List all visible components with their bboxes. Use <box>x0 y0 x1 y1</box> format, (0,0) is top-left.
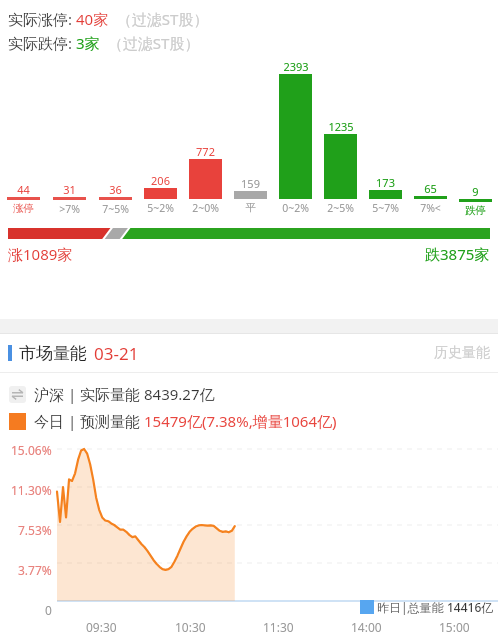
staticText: 平 <box>245 201 256 214</box>
staticText: （过滤ST股） <box>109 9 209 29</box>
staticText: 14:00 <box>351 619 382 635</box>
staticText: 0~2% <box>282 201 309 215</box>
staticText: 历史量能 <box>434 344 490 362</box>
staticText: 2393 <box>283 59 309 74</box>
staticText: 7~5% <box>102 202 129 216</box>
staticText: 跌3875家 <box>425 244 490 264</box>
staticText: （过滤ST股） <box>100 33 200 53</box>
staticText: 昨日|总量能 <box>377 599 447 615</box>
staticText: 实际涨停: <box>8 9 76 29</box>
staticText: 7.53% <box>18 522 52 538</box>
staticText: 31 <box>63 182 76 197</box>
staticText: 206 <box>151 173 170 188</box>
staticText: 5~2% <box>147 201 174 215</box>
staticText: 2~5% <box>327 201 354 215</box>
staticText: 15.06% <box>11 442 52 458</box>
staticText: 今日 | 预测量能 <box>34 411 144 431</box>
staticText: 11.30% <box>11 482 52 498</box>
staticText: 5~7% <box>372 201 399 215</box>
staticText: 3.77% <box>18 562 52 578</box>
button[interactable]: 市场量能 <box>0 334 498 372</box>
button[interactable]: 昨日|总量能 <box>360 599 494 615</box>
staticText: 2~0% <box>192 201 219 215</box>
staticText: 1235 <box>328 119 354 134</box>
staticText: 0 <box>45 602 52 618</box>
staticText: 772 <box>196 144 215 159</box>
staticText: 14416亿 <box>447 599 494 615</box>
staticText: 09:30 <box>86 619 117 635</box>
staticText: 10:30 <box>175 619 206 635</box>
staticText: 03-21 <box>94 342 139 365</box>
staticText: 3家 <box>76 33 100 53</box>
staticText: 159 <box>241 176 260 191</box>
staticText: 7%< <box>420 201 441 215</box>
staticText: 40家 <box>76 9 109 29</box>
staticText: 65 <box>424 181 437 196</box>
staticText: 涨1089家 <box>8 244 73 264</box>
staticText: 173 <box>376 175 395 190</box>
staticText: 沪深 | 实际量能 8439.27亿 <box>34 384 215 404</box>
staticText: 实际跌停: <box>8 33 76 53</box>
staticText: 11:30 <box>263 619 294 635</box>
other: 沪深图标 <box>9 386 26 403</box>
staticText: 市场量能 <box>19 343 87 364</box>
staticText: 9 <box>472 184 479 199</box>
staticText: >7% <box>59 202 80 216</box>
staticText: 44 <box>17 182 30 197</box>
staticText: 15479亿(7.38%,增量1064亿) <box>144 411 337 431</box>
staticText: 涨停 <box>13 202 34 215</box>
staticText: 36 <box>109 182 122 197</box>
staticText: 15:00 <box>439 619 470 635</box>
staticText: 跌停 <box>465 204 486 217</box>
